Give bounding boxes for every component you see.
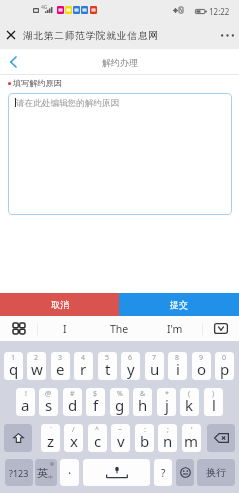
button[interactable]: &: [133, 388, 152, 416]
staticText: 4: [81, 353, 86, 363]
button[interactable]: I: [38, 316, 92, 341]
staticText: b: [140, 431, 150, 451]
button[interactable]: ?: [154, 459, 172, 486]
staticText: z: [47, 431, 55, 451]
button[interactable]: 4: [74, 352, 93, 380]
staticText: 8: [175, 353, 180, 363]
button[interactable]: :: [135, 424, 154, 452]
staticText: ?123: [9, 467, 29, 479]
staticText: %: [117, 389, 123, 399]
staticText: I'm: [167, 322, 183, 336]
staticText: j: [165, 395, 169, 415]
staticText: p: [220, 359, 230, 379]
staticText: `: [50, 425, 52, 435]
staticText: 12:22: [209, 6, 230, 17]
staticText: 9: [199, 353, 204, 363]
button[interactable]: Back: [0, 49, 26, 75]
staticText: c: [94, 431, 102, 451]
button[interactable]: Space: [83, 459, 150, 486]
button[interactable]: /: [64, 424, 83, 452]
staticText: d: [68, 395, 78, 415]
staticText: 湖北第二师范学院就业信息网: [23, 30, 159, 42]
staticText: l: [212, 395, 216, 415]
staticText: g: [115, 395, 125, 415]
button[interactable]: 提交: [119, 293, 239, 316]
staticText: k: [185, 395, 194, 415]
button[interactable]: %: [110, 388, 129, 416]
staticText: ·: [68, 465, 72, 481]
staticText: 请在此处编辑您的解约原因: [16, 98, 120, 109]
staticText: 4G: [41, 4, 48, 11]
button[interactable]: 2: [27, 352, 46, 380]
button[interactable]: 3: [51, 352, 70, 380]
staticText: q: [9, 359, 19, 379]
button[interactable]: ^: [88, 424, 107, 452]
button[interactable]: ): [204, 388, 223, 416]
button[interactable]: Close: [0, 24, 22, 46]
button[interactable]: @: [39, 388, 58, 416]
staticText: ~: [118, 425, 123, 435]
staticText: i: [176, 359, 180, 379]
staticText: (: [188, 389, 191, 399]
staticText: 英: [37, 466, 48, 480]
staticText: 换行: [206, 466, 226, 479]
button[interactable]: 请在此处编辑您的解约原因: [8, 93, 232, 215]
staticText: 取消: [51, 299, 69, 310]
button[interactable]: Hide keyboard: [202, 316, 239, 341]
staticText: I: [63, 322, 67, 336]
staticText: 中: [48, 474, 53, 480]
staticText: u: [150, 359, 160, 379]
button[interactable]: 取消: [0, 293, 119, 316]
button[interactable]: 英: [35, 459, 57, 486]
staticText: w: [31, 359, 43, 379]
staticText: ?: [161, 466, 166, 480]
staticText: 5: [105, 353, 110, 363]
staticText: 填写解约原因: [13, 78, 62, 88]
staticText: ^: [95, 425, 100, 435]
button[interactable]: 7: [145, 352, 164, 380]
staticText: x: [70, 431, 78, 451]
staticText: o: [197, 359, 207, 379]
button[interactable]: I'm: [147, 316, 202, 341]
staticText: 1: [11, 353, 16, 363]
staticText: y: [127, 359, 135, 379]
button[interactable]: 5: [98, 352, 117, 380]
button[interactable]: The: [92, 316, 147, 341]
button[interactable]: *: [157, 388, 176, 416]
button[interactable]: Keyboard layouts: [0, 316, 37, 341]
staticText: 3: [58, 353, 63, 363]
staticText: e: [56, 359, 65, 379]
button[interactable]: 0: [215, 352, 234, 380]
staticText: 7: [152, 353, 157, 363]
staticText: 6: [128, 353, 133, 363]
button[interactable]: Emoji: [176, 459, 194, 486]
button[interactable]: 1: [4, 352, 23, 380]
button[interactable]: 8: [168, 352, 187, 380]
button[interactable]: `: [41, 424, 60, 452]
button[interactable]: 9: [192, 352, 211, 380]
button[interactable]: More options: [215, 23, 239, 47]
staticText: r: [80, 359, 87, 379]
button[interactable]: 6: [121, 352, 140, 380]
staticText: 提交: [170, 299, 188, 310]
button[interactable]: !: [16, 388, 35, 416]
button[interactable]: ~: [111, 424, 130, 452]
button[interactable]: (: [180, 388, 199, 416]
staticText: f: [93, 395, 99, 415]
button[interactable]: 换行: [197, 459, 235, 486]
staticText: ): [212, 389, 215, 399]
button[interactable]: #: [63, 388, 82, 416]
staticText: 解约办理: [102, 57, 138, 68]
button[interactable]: Shift: [4, 424, 32, 452]
staticText: t: [105, 359, 111, 379]
button[interactable]: $: [86, 388, 105, 416]
staticText: !: [25, 389, 27, 399]
staticText: n: [163, 431, 173, 451]
button[interactable]: Backspace: [207, 424, 235, 452]
staticText: :: [144, 425, 146, 435]
button[interactable]: ;: [158, 424, 177, 452]
staticText: *: [165, 389, 169, 399]
button[interactable]: ·: [60, 459, 79, 486]
button[interactable]: ?123: [5, 459, 33, 486]
button[interactable]: ': [182, 424, 201, 452]
